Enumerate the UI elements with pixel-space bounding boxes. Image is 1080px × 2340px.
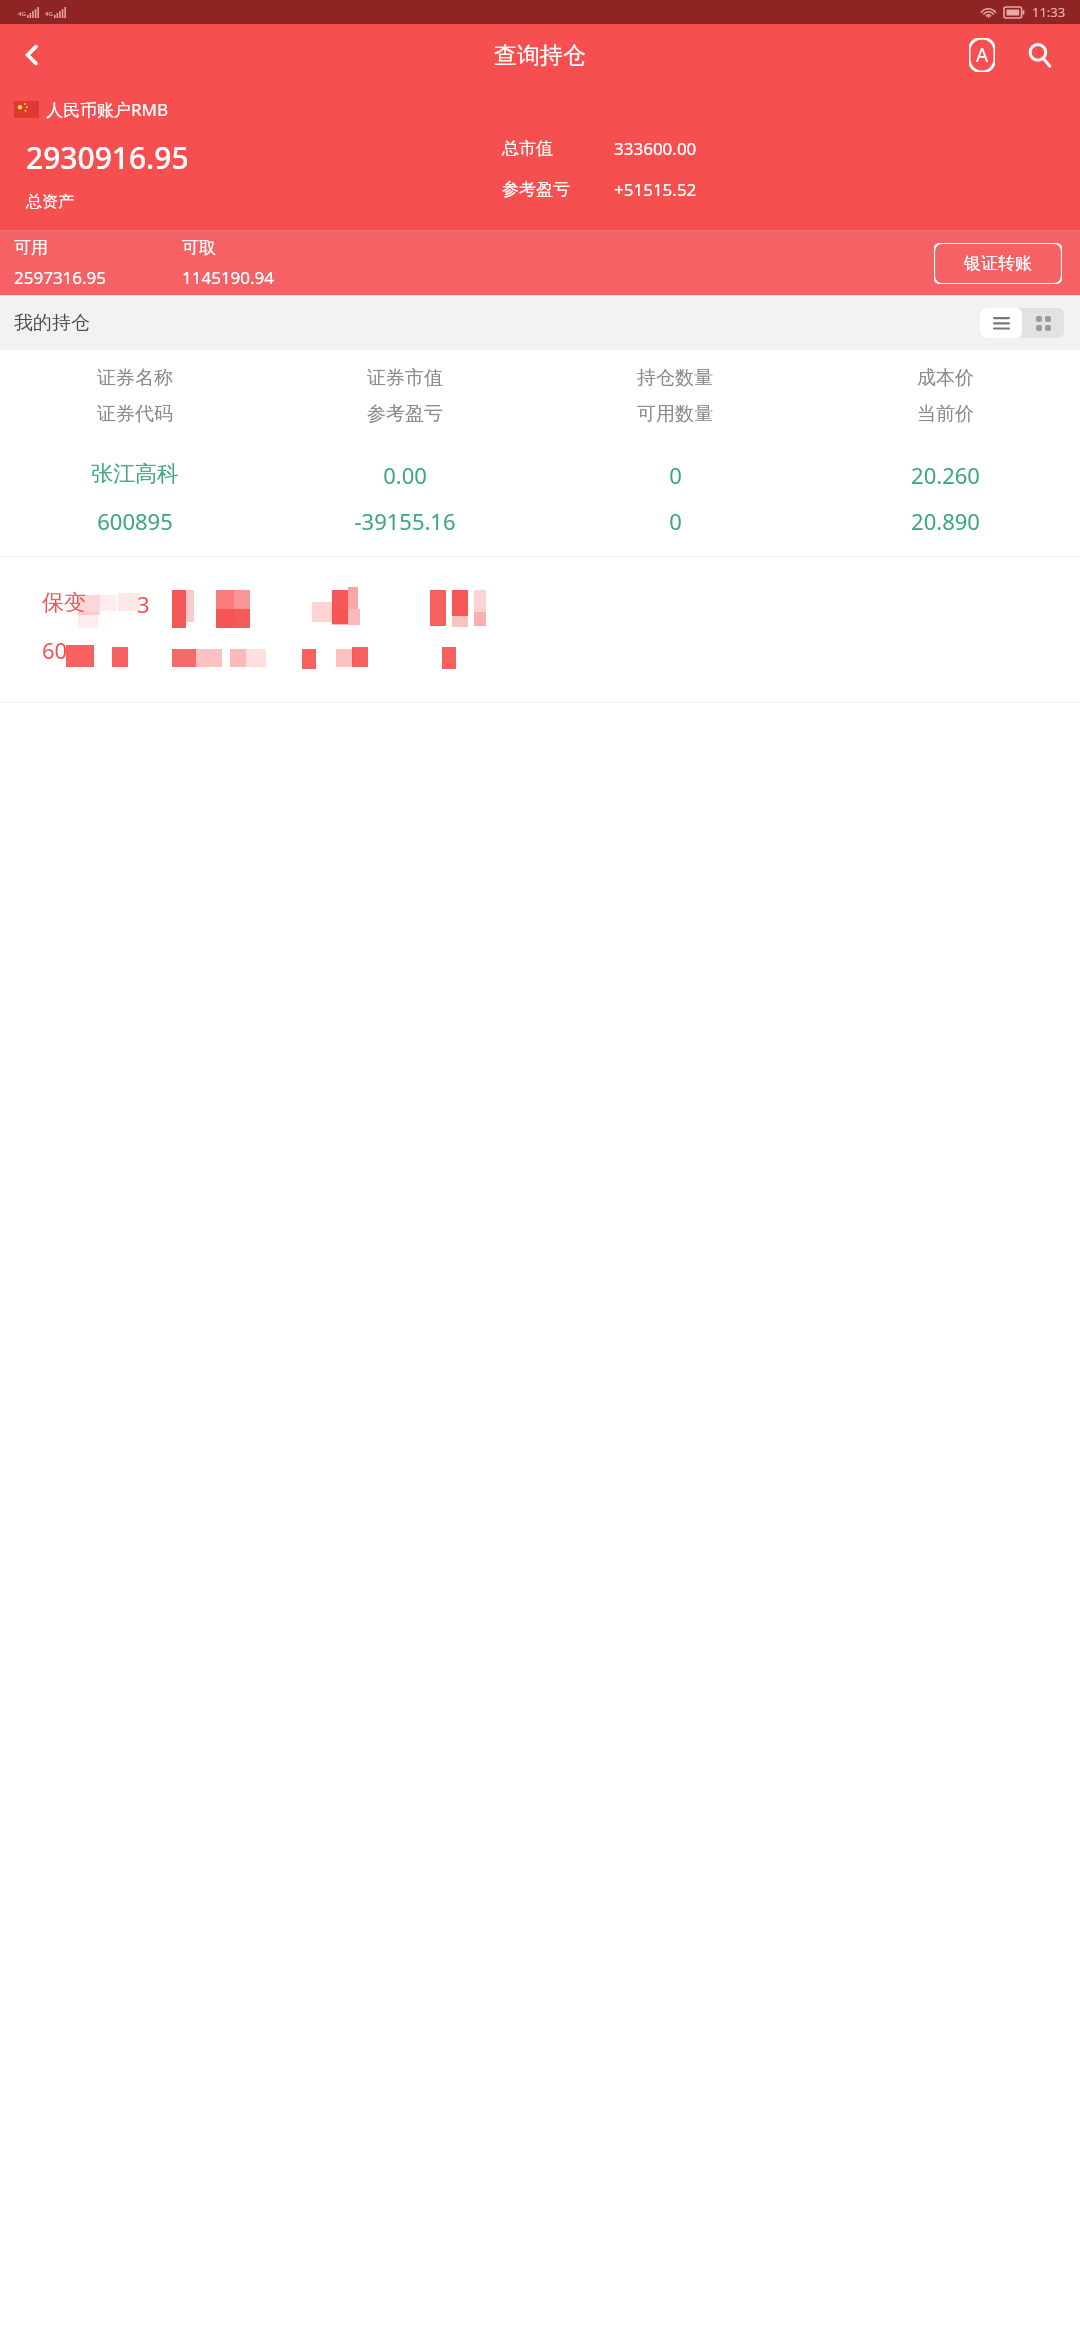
staticText: 3 — [137, 589, 150, 619]
staticText: 60 — [42, 635, 68, 665]
staticText: 600895 — [97, 506, 173, 536]
button[interactable]: Font size — [960, 33, 1004, 77]
staticText: 11:33 — [1032, 3, 1066, 21]
button[interactable]: Toggle view — [980, 308, 1064, 338]
button[interactable]: 保变 — [0, 557, 1080, 702]
staticText: 0 — [669, 506, 682, 536]
staticText: 持仓数量 — [637, 366, 713, 390]
staticText: 我的持仓 — [14, 311, 90, 335]
button[interactable]: 银证转账 — [934, 243, 1062, 284]
staticText: 证券名称 — [97, 366, 173, 390]
staticText: 2597316.95 — [14, 266, 107, 289]
staticText: 20.260 — [911, 460, 980, 490]
staticText: 人民币账户RMB — [46, 98, 169, 121]
staticText: -39155.16 — [354, 506, 456, 536]
staticText: 成本价 — [917, 366, 974, 390]
staticText: 证券代码 — [97, 402, 173, 426]
staticText: 0.00 — [383, 460, 427, 490]
staticText: 20.890 — [911, 506, 980, 536]
staticText: 查询持仓 — [494, 41, 586, 70]
staticText: 银证转账 — [964, 253, 1032, 274]
staticText: A — [976, 42, 989, 68]
staticText: 333600.00 — [614, 137, 697, 160]
staticText: 2930916.95 — [26, 137, 189, 178]
button[interactable]: Back — [6, 29, 58, 81]
button[interactable]: 张江高科 — [0, 438, 1080, 556]
button[interactable]: Search — [1018, 33, 1062, 77]
staticText: 可用数量 — [637, 402, 713, 426]
staticText: 参考盈亏 — [367, 402, 443, 426]
staticText: 当前价 — [917, 402, 974, 426]
staticText: 可取 — [182, 237, 216, 258]
staticText: 0 — [669, 460, 682, 490]
staticText: +51515.52 — [614, 178, 697, 201]
staticText: 1145190.94 — [182, 266, 275, 289]
staticText: 张江高科 — [91, 460, 179, 488]
staticText: 4G — [45, 10, 53, 18]
staticText: 可用 — [14, 237, 48, 258]
staticText: 总市值 — [502, 138, 614, 159]
staticText: 保变 — [42, 589, 86, 617]
staticText: 证券市值 — [367, 366, 443, 390]
staticText: 4G — [18, 10, 26, 18]
staticText: 参考盈亏 — [502, 179, 614, 200]
staticText: 总资产 — [26, 192, 74, 212]
